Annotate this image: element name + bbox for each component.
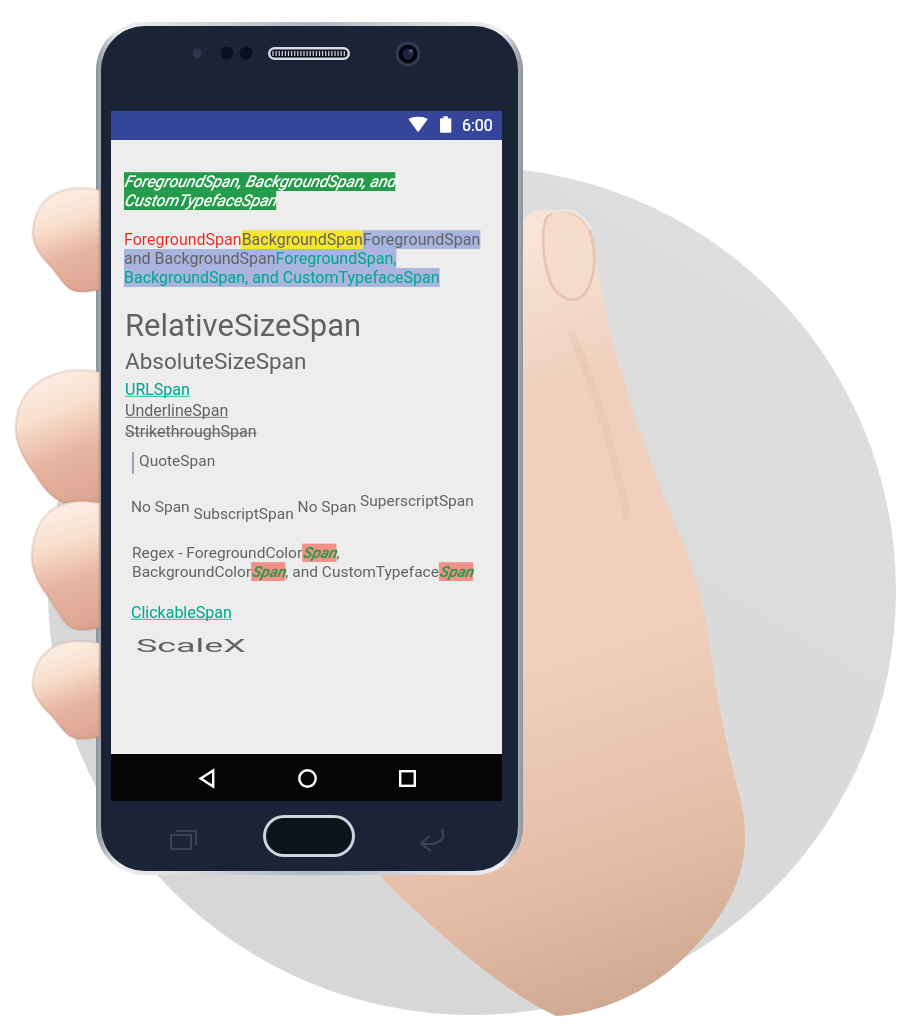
staticText: ClickableSpan: [131, 603, 232, 622]
staticText: RelativeSizeSpan: [125, 307, 362, 343]
staticText: Regex - ForegroundColorSpan, BackgroundC…: [132, 544, 474, 581]
staticText: AbsoluteSizeSpan: [125, 348, 307, 374]
staticText: StrikethroughSpan: [125, 422, 257, 441]
button[interactable]: Home: [266, 818, 352, 854]
staticText: UnderlineSpan: [125, 401, 229, 420]
staticText: ForegroundSpanBackgroundSpanForegroundSp…: [124, 230, 482, 287]
staticText: 6:00: [462, 116, 493, 135]
button[interactable]: ClickableSpan: [131, 603, 232, 622]
staticText: ScaleX: [136, 636, 247, 657]
button[interactable]: Back: [187, 758, 227, 798]
button[interactable]: Recents: [387, 758, 427, 798]
staticText: URLSpan: [125, 380, 190, 399]
staticText: QuoteSpan: [139, 452, 216, 470]
staticText: No Span SubscriptSpan No Span Superscrip…: [131, 492, 474, 523]
button[interactable]: URLSpan: [125, 380, 190, 399]
staticText: ForegroundSpan, BackgroundSpan, and Cust…: [124, 172, 402, 210]
button[interactable]: Home: [287, 758, 327, 798]
